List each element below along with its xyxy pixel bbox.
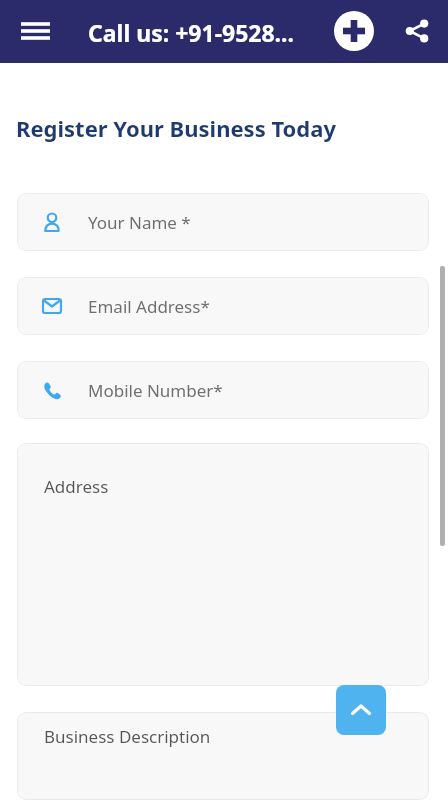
- button[interactable]: Email Address*: [17, 277, 429, 335]
- staticText: Call us: +91-9528...: [88, 17, 295, 48]
- button[interactable]: [21, 22, 61, 48]
- button[interactable]: Your Name *: [17, 193, 429, 251]
- button[interactable]: [336, 685, 386, 735]
- button[interactable]: Business Description: [17, 712, 429, 800]
- button[interactable]: [399, 13, 435, 49]
- staticText: Your Name *: [88, 211, 191, 234]
- button[interactable]: Mobile Number*: [17, 361, 429, 419]
- staticText: Register Your Business Today: [16, 113, 336, 143]
- button[interactable]: [334, 11, 374, 51]
- staticText: Email Address*: [88, 295, 210, 318]
- staticText: Mobile Number*: [88, 379, 223, 402]
- staticText: Business Description: [44, 725, 211, 748]
- staticText: Address: [44, 475, 109, 498]
- button[interactable]: Address: [17, 443, 429, 686]
